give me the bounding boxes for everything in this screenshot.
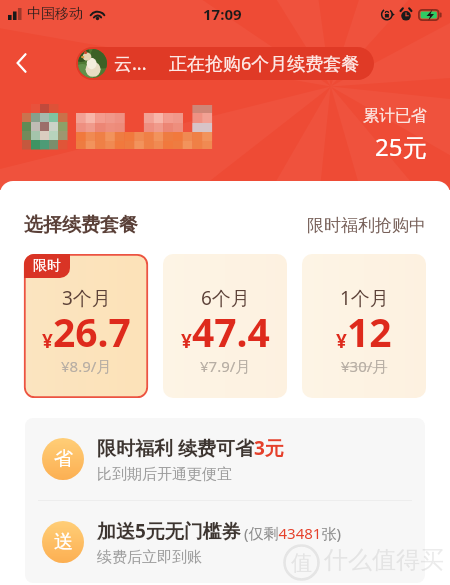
staticText: ¥ [181,328,192,354]
button[interactable]: 省 [42,418,411,500]
staticText: 中国移动 [27,5,83,23]
staticText: 12 [347,305,392,358]
staticText: 1个月 [340,285,389,311]
button[interactable] [302,254,426,398]
staticText: 47.4 [192,305,270,358]
staticText: 省 [54,447,73,471]
staticText: ¥ [336,328,347,354]
staticText: 比到期后开通更便宜 [97,465,232,484]
button[interactable]: 云... [78,47,360,80]
staticText: ¥30/月 [341,356,388,376]
staticText: 正在抢购6个月续费套餐 [169,51,360,76]
staticText: ¥ [42,328,53,354]
button[interactable]: 送 [42,501,411,583]
staticText: 选择续费套餐 [24,213,138,237]
staticText: 26.7 [53,305,131,358]
staticText: ¥7.9/月 [200,356,251,376]
staticText: 续费后立即到账 [97,548,202,567]
staticText: 限时福利 续费可省 [97,435,254,461]
staticText: 什么值得买 [324,545,444,575]
button[interactable] [163,254,287,398]
staticText: 送 [54,530,73,554]
staticText: 限时 [33,257,61,275]
staticText: 25元 [375,130,427,163]
staticText: 3个月 [62,285,111,311]
staticText: 值 [291,550,312,576]
staticText: (仅剩43481张) [244,523,341,543]
staticText: 3元 [254,435,284,461]
staticText: 17:09 [203,4,242,24]
staticText: 累计已省 [363,106,427,126]
staticText: 6个月 [201,285,250,311]
staticText: 限时福利抢购中 [307,215,426,236]
button[interactable] [24,254,148,398]
staticText: 加送5元无门槛券 [97,518,241,544]
button[interactable]: Back [2,43,42,83]
staticText: 云... [114,51,147,76]
staticText: ¥8.9/月 [61,356,112,376]
